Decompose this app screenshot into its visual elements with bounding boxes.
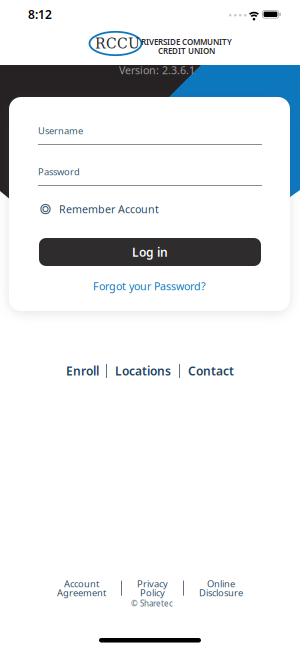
staticText: CREDIT UNION xyxy=(158,46,215,56)
button[interactable]: Contact xyxy=(188,363,234,379)
staticText: Locations xyxy=(115,363,171,379)
staticText: RIVERSIDE COMMUNITY xyxy=(141,36,232,47)
button[interactable]: Locations xyxy=(115,363,171,379)
staticText: Enroll xyxy=(66,363,99,379)
staticText: Policy xyxy=(140,586,165,599)
staticText: Account xyxy=(64,577,99,590)
staticText: Log in xyxy=(132,244,168,260)
button[interactable]: Username xyxy=(38,117,262,145)
staticText: 8:12 xyxy=(28,6,52,22)
button[interactable]: Privacy xyxy=(137,577,168,599)
staticText: Password xyxy=(38,165,80,178)
staticText: © Sharetec xyxy=(131,598,173,609)
staticText: Contact xyxy=(188,363,234,379)
staticText: Version: 2.3.6.1 xyxy=(119,63,195,77)
staticText: Disclosure xyxy=(199,586,243,599)
staticText: Agreement xyxy=(57,586,106,599)
staticText: Online xyxy=(207,577,235,590)
staticText: RCCU xyxy=(95,35,140,52)
button[interactable]: Forgot your Password? xyxy=(9,279,290,293)
button[interactable]: Log in xyxy=(39,238,261,266)
staticText: Remember Account xyxy=(59,202,159,216)
button[interactable]: Online xyxy=(199,577,243,599)
staticText: Forgot your Password? xyxy=(93,279,206,293)
staticText: Privacy xyxy=(137,577,168,590)
button[interactable]: Remember Account xyxy=(40,202,159,216)
button[interactable]: Password xyxy=(38,158,262,186)
staticText: Username xyxy=(38,124,83,137)
button[interactable]: Account xyxy=(57,577,106,599)
button[interactable]: Enroll xyxy=(66,363,99,379)
